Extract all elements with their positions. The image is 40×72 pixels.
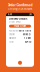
staticText: Track Order [14,25,26,27]
button[interactable]: Track Order [9,25,31,28]
staticText: Courier [9,33,15,36]
staticText: Live [29,13,32,16]
staticText: $24.50 [25,41,31,43]
staticText: 9:41 [8,13,12,16]
staticText: Bella Italia [19,30,31,32]
staticText: 1.2 km [24,37,31,39]
staticText: Restaurant [9,30,19,32]
staticText: Order Confirmed [7,3,32,7]
staticText: Delivery Details [9,17,27,20]
staticText: Order #4821 [9,21,21,23]
staticText: Total [9,41,13,43]
staticText: Mike D. [23,33,31,36]
staticText: Distance [9,37,16,39]
staticText: Arriving in 25 minutes [8,8,32,11]
